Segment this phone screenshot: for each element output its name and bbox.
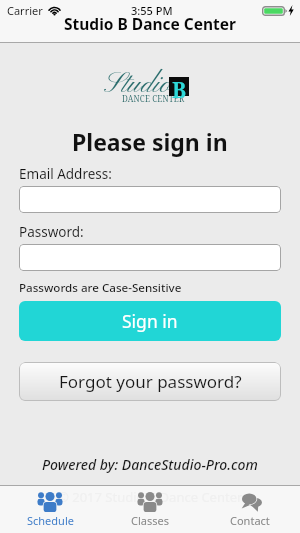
button[interactable]: Forgot your password?: [19, 362, 281, 401]
button[interactable]: Sign in: [19, 301, 281, 341]
button[interactable]: Contact: [200, 486, 300, 533]
button[interactable]: [19, 186, 281, 213]
button[interactable]: [19, 244, 281, 271]
staticText: Schedule: [27, 513, 74, 528]
staticText: Carrier: [7, 3, 43, 18]
staticText: Powered by: DanceStudio-Pro.com: [42, 455, 258, 474]
button[interactable]: Schedule: [0, 486, 100, 533]
button[interactable]: Classes: [100, 486, 200, 533]
staticText: Email Address:: [19, 165, 112, 183]
staticText: Please sign in: [72, 126, 228, 157]
staticText: 3:55 PM: [131, 3, 173, 18]
staticText: © 2017 Studio B Dance Center: [58, 488, 243, 506]
staticText: Contact: [230, 513, 270, 528]
staticText: Passwords are Case-Sensitive: [19, 280, 182, 296]
staticText: Sign in: [122, 309, 178, 333]
staticText: Studio B Dance Center: [64, 13, 237, 34]
staticText: Studio: [104, 67, 171, 103]
staticText: DANCE CENTER: [122, 93, 185, 104]
staticText: B: [172, 76, 187, 105]
staticText: Forgot your password?: [59, 370, 242, 393]
staticText: Classes: [131, 513, 169, 528]
staticText: Password:: [19, 223, 84, 241]
